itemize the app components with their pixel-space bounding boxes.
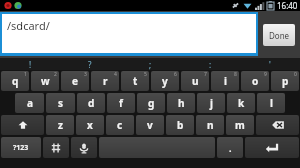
button[interactable]: c xyxy=(106,115,134,135)
staticText: 2 xyxy=(54,71,57,78)
button[interactable]: : xyxy=(180,58,240,70)
button[interactable]: f xyxy=(107,93,135,113)
button[interactable]: ? xyxy=(60,58,120,70)
button[interactable]: . xyxy=(217,137,243,158)
button[interactable]: v xyxy=(136,115,164,135)
button[interactable]: z xyxy=(46,115,74,135)
staticText: m xyxy=(235,118,245,132)
staticText: f xyxy=(119,96,123,110)
staticText: ; xyxy=(149,59,152,70)
staticText: g xyxy=(148,96,155,110)
staticText: v xyxy=(147,118,153,132)
button[interactable]: k xyxy=(227,93,255,113)
staticText: . xyxy=(229,142,232,154)
button[interactable]: m xyxy=(226,115,254,135)
staticText: k xyxy=(238,96,245,110)
staticText: t xyxy=(133,74,138,88)
button[interactable]: e xyxy=(61,71,89,91)
button[interactable]: d xyxy=(77,93,105,113)
staticText: 16:40 xyxy=(277,0,298,11)
button[interactable]: y xyxy=(151,71,179,91)
button[interactable]: r xyxy=(91,71,119,91)
button[interactable]: Shift xyxy=(1,115,44,135)
staticText: j xyxy=(210,96,213,110)
staticText: e xyxy=(72,74,78,88)
button[interactable]: ' xyxy=(240,58,300,70)
staticText: i xyxy=(224,74,227,88)
staticText: z xyxy=(58,118,63,132)
button[interactable]: p xyxy=(271,71,299,91)
staticText: ! xyxy=(29,59,32,70)
staticText: ? xyxy=(88,59,92,70)
staticText: y xyxy=(162,74,168,88)
staticText: /sdcard/ xyxy=(7,18,50,33)
staticText: 6 xyxy=(174,71,177,78)
button[interactable]: ; xyxy=(120,58,180,70)
staticText: h xyxy=(178,96,185,110)
staticText: ?123 xyxy=(13,143,29,153)
button[interactable]: o xyxy=(241,71,269,91)
staticText: o xyxy=(252,74,259,88)
button[interactable]: i xyxy=(211,71,239,91)
button[interactable]: ?123 xyxy=(1,137,41,158)
staticText: 3 xyxy=(84,71,87,78)
staticText: a xyxy=(27,96,33,110)
button[interactable]: Voice input xyxy=(71,137,97,158)
staticText: 1 xyxy=(24,71,27,78)
button[interactable]: x xyxy=(76,115,104,135)
staticText: : xyxy=(209,59,212,70)
staticText: 5 xyxy=(144,71,147,78)
staticText: 4 xyxy=(114,71,117,78)
button[interactable]: q xyxy=(1,71,29,91)
button[interactable]: g xyxy=(137,93,165,113)
button[interactable] xyxy=(99,137,215,158)
button[interactable]: j xyxy=(197,93,225,113)
staticText: ' xyxy=(269,59,271,70)
button[interactable]: w xyxy=(31,71,59,91)
button[interactable]: a xyxy=(15,93,44,113)
staticText: q xyxy=(12,74,19,88)
button[interactable]: Input method xyxy=(43,137,69,158)
staticText: d xyxy=(88,96,95,110)
staticText: c xyxy=(117,118,123,132)
button[interactable]: t xyxy=(121,71,149,91)
staticText: b xyxy=(177,118,184,132)
staticText: p xyxy=(282,74,289,88)
staticText: 0 xyxy=(294,71,297,78)
staticText: r xyxy=(103,74,108,88)
button[interactable]: Done xyxy=(263,24,295,46)
staticText: Done xyxy=(269,30,290,41)
button[interactable]: n xyxy=(196,115,224,135)
button[interactable]: /sdcard/ xyxy=(2,14,256,53)
button[interactable]: b xyxy=(166,115,194,135)
button[interactable]: l xyxy=(257,93,285,113)
button[interactable]: u xyxy=(181,71,209,91)
staticText: x xyxy=(87,118,93,132)
staticText: l xyxy=(270,96,273,110)
button[interactable]: Enter xyxy=(245,137,299,158)
staticText: 7 xyxy=(204,71,207,78)
staticText: 9 xyxy=(264,71,267,78)
staticText: w xyxy=(41,74,50,88)
button[interactable]: Backspace xyxy=(256,115,299,135)
staticText: 8 xyxy=(234,71,237,78)
staticText: n xyxy=(207,118,214,132)
button[interactable]: s xyxy=(46,93,75,113)
button[interactable]: h xyxy=(167,93,195,113)
staticText: s xyxy=(58,96,64,110)
staticText: u xyxy=(192,74,199,88)
button[interactable]: ! xyxy=(0,58,60,70)
